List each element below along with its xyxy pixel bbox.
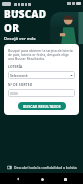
button[interactable]: Home <box>37 174 47 184</box>
staticText: Seleccioná <box>10 73 70 78</box>
staticText: Descubrí toda la confiabilidad a bolsita <box>14 165 77 170</box>
other: Info <box>7 165 12 170</box>
staticText: Volver <box>12 9 24 14</box>
staticText: Busqué para obtener la tarjeta de loterí… <box>8 48 75 61</box>
staticText: Desejá ver más resultados del Cuponl? <box>4 36 53 42</box>
staticText: LOTERÍA <box>8 65 23 69</box>
button[interactable]: 0000 <box>8 89 75 97</box>
button[interactable]: Back <box>3 8 26 15</box>
staticText: BUSCAR RESULTADOS <box>23 104 61 109</box>
staticText: N° DE SORTEO <box>8 83 33 87</box>
button[interactable]: BUSCAR RESULTADOS <box>18 102 66 110</box>
button[interactable]: Back <box>13 174 23 184</box>
staticText: BUSCADOR <box>4 7 53 35</box>
other: Back <box>5 9 10 14</box>
button[interactable]: Info <box>0 161 83 173</box>
button[interactable]: Recent apps <box>60 174 70 184</box>
button[interactable]: Seleccioná <box>8 71 75 79</box>
staticText: 0000 <box>10 91 18 96</box>
